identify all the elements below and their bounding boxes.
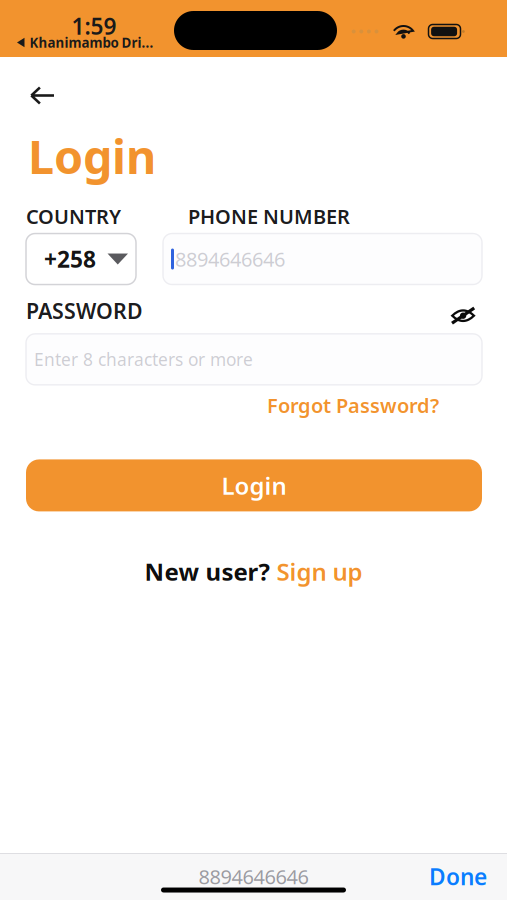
staticText: +258 — [44, 244, 96, 274]
button[interactable]: Done — [415, 855, 487, 897]
staticText: PHONE NUMBER — [188, 203, 350, 230]
staticText: PASSWORD — [26, 296, 143, 325]
staticText: Login — [28, 125, 156, 187]
button[interactable]: 8894646646 — [163, 233, 482, 284]
staticText: Login — [221, 469, 286, 501]
button[interactable]: Forgot Password? — [267, 392, 439, 418]
staticText: 8894646646 — [175, 246, 285, 272]
staticText: COUNTRY — [26, 203, 121, 230]
button[interactable]: Login — [26, 459, 482, 511]
staticText: Khanimambo Dri... — [29, 34, 153, 51]
button[interactable]: +258 — [26, 233, 136, 284]
staticText: Done — [429, 861, 487, 891]
staticText: Forgot Password? — [267, 392, 439, 418]
button[interactable]: Enter 8 characters or more — [26, 334, 482, 385]
button[interactable]: Show password — [445, 297, 482, 324]
staticText: 8894646646 — [198, 863, 308, 890]
staticText: Enter 8 characters or more — [34, 348, 253, 371]
button[interactable]: Back — [0, 77, 69, 114]
staticText: 1:59 — [71, 11, 116, 41]
button[interactable]: Sign up — [276, 555, 362, 587]
staticText: New user? — [144, 555, 269, 587]
staticText: Sign up — [276, 555, 362, 587]
